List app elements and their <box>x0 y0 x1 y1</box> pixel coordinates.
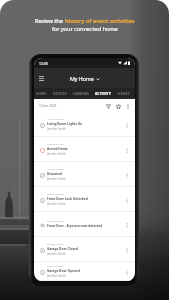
button[interactable]: 10:01:34 AM EDT <box>34 187 135 212</box>
staticText: Jennifer Smith <box>47 127 66 131</box>
staticText: for your connected home <box>52 25 118 33</box>
button[interactable]: 10:10:18 AM EDT <box>34 112 135 137</box>
button[interactable]: Filter <box>103 100 113 112</box>
button[interactable]: 10:00:56 AM EDT <box>34 212 135 237</box>
button[interactable]: 09:49:24 AM EDT <box>34 237 135 262</box>
staticText: Front Door Lock Unlocked <box>47 197 88 201</box>
staticText: 10:02:58 AM EDT <box>47 143 64 146</box>
button[interactable]: CAMERAS <box>73 88 89 99</box>
staticText: 10:00:56 AM EDT <box>47 220 64 223</box>
staticText: Living Room Lights On <box>47 122 83 126</box>
staticText: Jennifer Smith <box>47 177 66 181</box>
staticText: Front Door - A person was detected <box>47 224 103 228</box>
staticText: Disarmed <box>47 172 63 176</box>
button[interactable]: SCENES <box>117 88 130 99</box>
staticText: Garage Door Closed <box>47 247 78 251</box>
staticText: Jennifer Smith <box>47 274 66 278</box>
staticText: Armed Home <box>47 147 68 151</box>
staticText: SCENES <box>117 91 130 96</box>
staticText: ACTIVITY <box>95 91 111 96</box>
staticText: 13 Jun 2023 <box>39 104 57 108</box>
button[interactable]: HOME <box>36 88 47 99</box>
button[interactable]: 09:46:12 AM EDT <box>34 262 135 281</box>
button[interactable]: DEVICES <box>53 88 67 99</box>
staticText: Garage Door Opened <box>47 269 80 273</box>
staticText: 10:01:34 AM EDT <box>47 193 64 196</box>
staticText: 10:10:18 AM EDT <box>47 118 64 121</box>
button[interactable]: Open navigation menu <box>37 74 46 83</box>
button[interactable]: 10:02:49 AM EDT <box>34 162 135 187</box>
staticText: HOME <box>36 91 47 96</box>
staticText: DEVICES <box>53 91 67 96</box>
staticText: Jennifer Smith <box>47 252 66 256</box>
button[interactable]: Event options <box>123 143 131 157</box>
button[interactable]: My Home <box>70 75 100 82</box>
button[interactable]: Event options <box>123 243 131 257</box>
button[interactable]: ACTIVITY <box>95 88 111 99</box>
staticText: Jennifer Smith <box>47 152 66 156</box>
staticText: CAMERAS <box>73 91 89 96</box>
staticText: 12:30 <box>39 61 48 66</box>
button[interactable]: 10:02:58 AM EDT <box>34 137 135 162</box>
button[interactable]: Event options <box>123 265 131 279</box>
button[interactable]: More options <box>123 100 133 112</box>
button[interactable]: Event options <box>123 118 131 132</box>
button[interactable]: Event options <box>123 168 131 182</box>
staticText: Review the <box>35 17 65 25</box>
staticText: Jennifer Smith <box>47 202 66 206</box>
button[interactable]: Event options <box>123 193 131 207</box>
staticText: 09:49:24 AM EDT <box>47 243 64 246</box>
staticText: My Home <box>70 75 94 82</box>
button[interactable]: Event options <box>123 218 131 232</box>
staticText: 09:46:12 AM EDT <box>47 265 64 268</box>
staticText: 10:02:49 AM EDT <box>47 168 64 171</box>
button[interactable]: Favorites <box>113 100 123 112</box>
staticText: history of event activities <box>65 17 135 25</box>
